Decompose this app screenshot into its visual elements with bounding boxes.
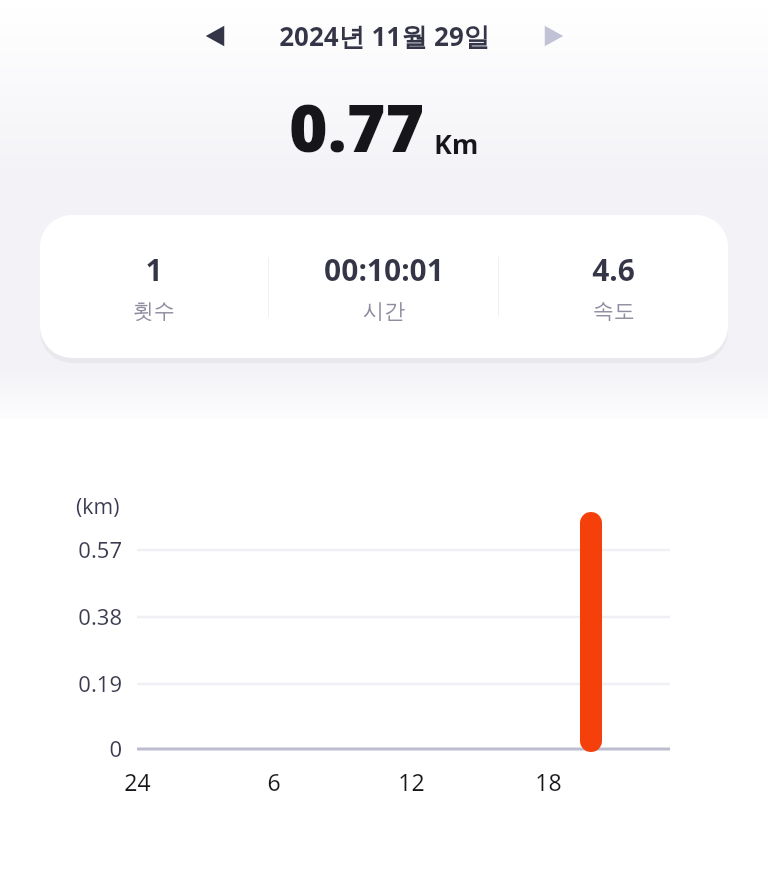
staticText: 0.38 bbox=[78, 601, 122, 631]
staticText: 2024년 11월 29일 bbox=[279, 18, 490, 54]
staticText: 6 bbox=[267, 766, 281, 797]
staticText: 0.77 bbox=[289, 81, 425, 171]
staticText: 12 bbox=[398, 766, 425, 797]
staticText: 속도 bbox=[593, 298, 635, 324]
staticText: 0.19 bbox=[78, 668, 122, 698]
staticText: 18 bbox=[535, 766, 562, 797]
staticText: 1 bbox=[145, 249, 163, 290]
staticText: 4.6 bbox=[592, 249, 635, 290]
button[interactable]: 1 bbox=[40, 215, 728, 358]
staticText: 시간 bbox=[363, 298, 405, 324]
staticText: 00:10:01 bbox=[324, 249, 444, 290]
button[interactable]: Next day bbox=[532, 14, 576, 58]
staticText: 24 bbox=[124, 766, 151, 797]
staticText: 0 bbox=[109, 733, 122, 763]
staticText: 횟수 bbox=[133, 298, 175, 324]
button[interactable]: Previous day bbox=[193, 14, 237, 58]
staticText: 0.57 bbox=[78, 534, 122, 564]
staticText: (km) bbox=[76, 492, 120, 521]
staticText: Km bbox=[434, 125, 479, 162]
